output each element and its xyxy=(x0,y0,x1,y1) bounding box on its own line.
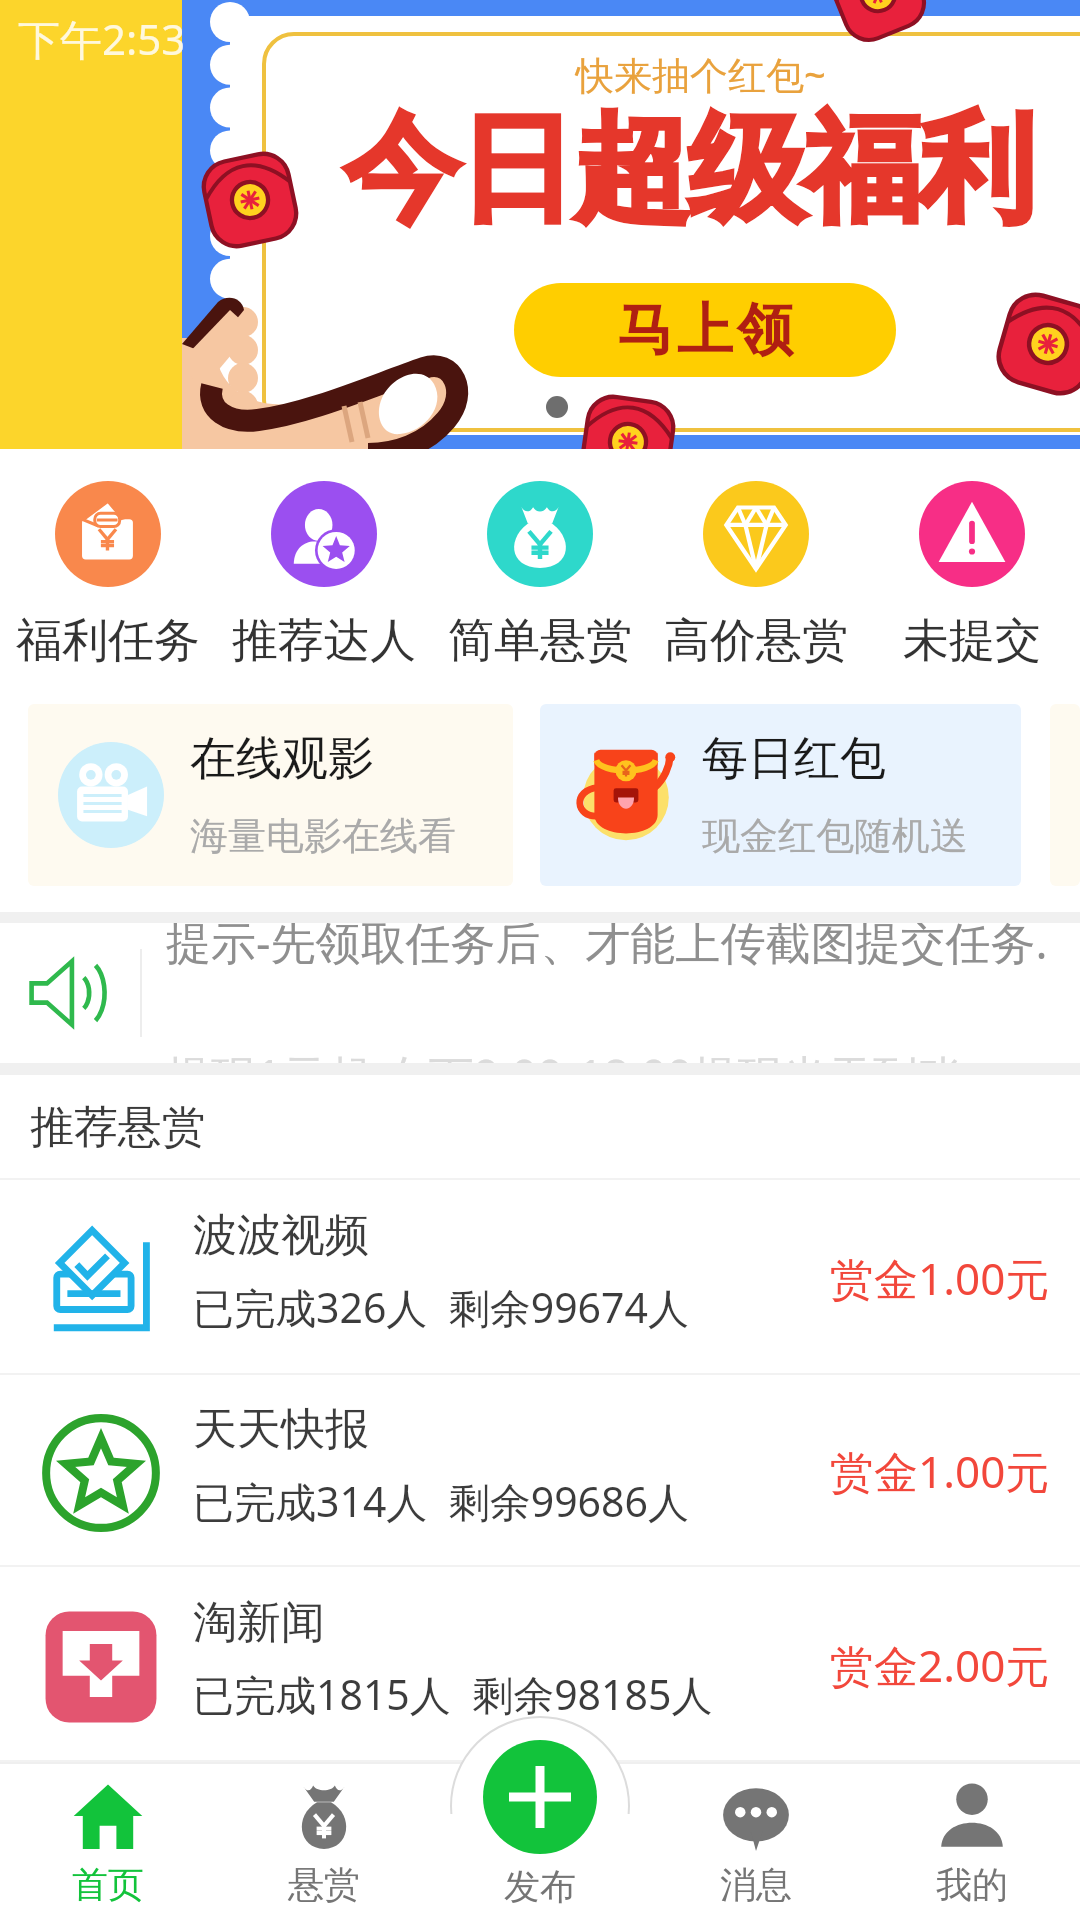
button[interactable]: 在线观影 xyxy=(28,704,513,886)
staticText: 在线观影 xyxy=(190,730,374,788)
staticText: 赏金1.00元 xyxy=(830,1441,1050,1501)
other: 发布 xyxy=(483,1740,597,1854)
button[interactable]: 波波视频 xyxy=(0,1180,1080,1375)
button[interactable]: 发布 xyxy=(432,1762,648,1920)
button[interactable]: 推荐达人 xyxy=(216,449,432,704)
button[interactable]: 每日红包 xyxy=(540,704,1021,886)
button[interactable]: 公告 xyxy=(0,923,1080,1063)
staticText: 淘新闻 xyxy=(193,1595,325,1650)
staticText: 下午2:53 xyxy=(18,10,186,67)
staticText: 快来抽个红包~ xyxy=(576,48,826,100)
staticText: 波波视频 xyxy=(193,1208,369,1263)
staticText: 未提交 xyxy=(903,612,1041,670)
other: 公告 xyxy=(22,945,118,1041)
button[interactable]: 天天快报 xyxy=(0,1375,1080,1567)
button[interactable]: 消息 xyxy=(648,1762,864,1920)
staticText: 推荐达人 xyxy=(232,612,416,670)
staticText: 消息 xyxy=(720,1862,792,1907)
button[interactable]: 淘新闻 xyxy=(0,1567,1080,1762)
button[interactable]: 福利任务 xyxy=(0,449,216,704)
staticText: 我的 xyxy=(936,1862,1008,1907)
button[interactable]: 高价悬赏 xyxy=(648,449,864,704)
staticText: 简单悬赏 xyxy=(448,612,632,670)
staticText: 赏金2.00元 xyxy=(830,1635,1050,1695)
button[interactable]: 快来抽个红包~ xyxy=(0,0,1080,449)
staticText: 推荐悬赏 xyxy=(30,1100,206,1155)
button[interactable]: 首页 xyxy=(0,1762,216,1920)
staticText: 福利任务 xyxy=(16,612,200,670)
staticText: 天天快报 xyxy=(193,1402,369,1457)
staticText: 首页 xyxy=(72,1862,144,1907)
button[interactable]: 我的 xyxy=(864,1762,1080,1920)
button[interactable]: 未提交 xyxy=(864,449,1080,704)
staticText: 发布 xyxy=(504,1864,576,1908)
button[interactable]: 悬赏 xyxy=(216,1762,432,1920)
staticText: 提现1元起,在下9:00-18:00提现当天到账 xyxy=(166,1045,963,1063)
staticText: 马上领 xyxy=(615,295,795,366)
staticText: 现金红包随机送 xyxy=(702,812,968,860)
staticText: 今日超级福利 xyxy=(344,96,1034,243)
staticText: 已完成1815人 剩余98185人 xyxy=(193,1666,713,1722)
staticText: 赏金1.00元 xyxy=(830,1248,1050,1308)
button[interactable]: 简单悬赏 xyxy=(432,449,648,704)
staticText: 已完成314人 剩余99686人 xyxy=(193,1473,689,1529)
staticText: 高价悬赏 xyxy=(664,612,848,670)
staticText: 悬赏 xyxy=(288,1862,360,1907)
staticText: 海量电影在线看 xyxy=(190,812,456,860)
staticText: 已完成326人 剩余99674人 xyxy=(193,1279,689,1335)
staticText: 提示-先领取任务后、才能上传截图提交任务. xyxy=(166,923,1048,972)
button[interactable]: 马上领 xyxy=(514,283,896,377)
staticText: 每日红包 xyxy=(702,730,886,788)
